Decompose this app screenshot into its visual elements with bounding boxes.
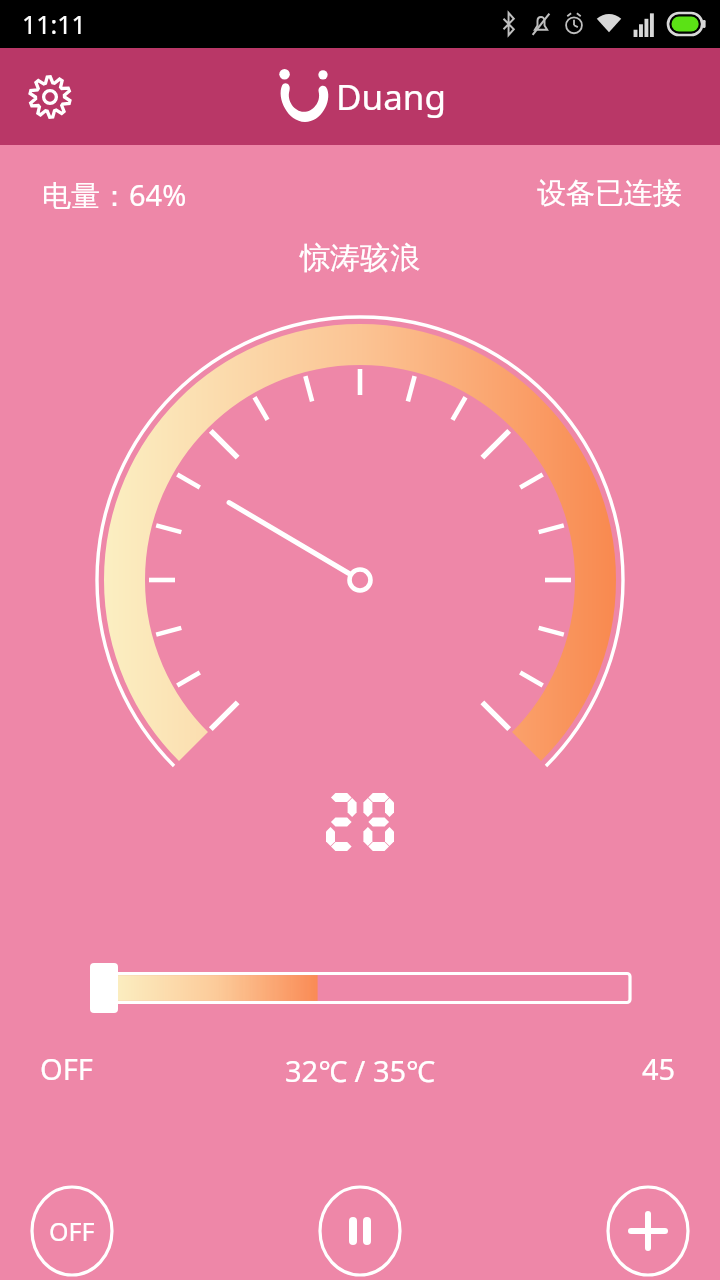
staticText: OFF [40, 1049, 93, 1088]
staticText: 设备已连接 [537, 175, 682, 212]
button[interactable]: Intensity slider [90, 963, 630, 1013]
button[interactable]: Increase [608, 1187, 688, 1275]
staticText: 45 [642, 1049, 676, 1088]
staticText: 惊涛骇浪 [300, 239, 420, 277]
staticText: 32℃ / 35℃ [285, 1051, 435, 1090]
button[interactable]: Pause [320, 1187, 400, 1275]
staticText: OFF [49, 1214, 95, 1248]
button[interactable]: Settings [18, 65, 82, 129]
staticText: Duang [336, 73, 446, 121]
staticText: 电量：64% [42, 175, 187, 215]
button[interactable]: OFF [32, 1187, 112, 1275]
staticText: 11:11 [22, 7, 86, 41]
